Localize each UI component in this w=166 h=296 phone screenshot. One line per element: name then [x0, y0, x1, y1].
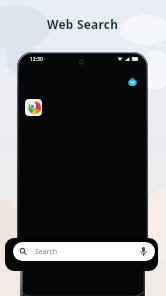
staticText: Search: [35, 247, 58, 257]
staticText: 12:30: [30, 56, 43, 63]
staticText: Web Search: [47, 16, 119, 32]
button[interactable]: [25, 99, 42, 116]
button[interactable]: Search: [13, 242, 155, 261]
button[interactable]: [128, 77, 137, 86]
